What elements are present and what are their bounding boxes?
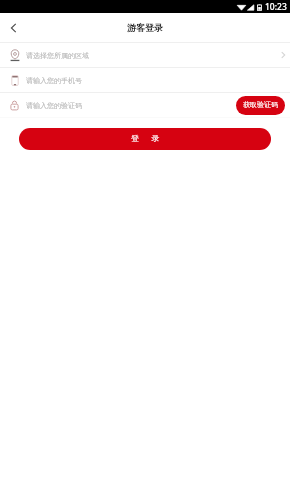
staticText: 游客登录 — [127, 22, 163, 33]
button[interactable]: 请输入您的手机号 — [0, 68, 290, 92]
staticText: 10:23 — [265, 1, 287, 13]
button[interactable]: Back — [0, 14, 28, 42]
button[interactable]: 请输入您的验证码 — [0, 93, 290, 117]
staticText: 请选择您所属的区域 — [26, 51, 89, 60]
staticText: 登 录 — [131, 132, 160, 143]
button[interactable]: 请选择您所属的区域 — [0, 43, 290, 67]
button[interactable]: 登 录 — [19, 128, 271, 150]
staticText: 请输入您的验证码 — [26, 101, 82, 110]
button[interactable]: Select region — [272, 46, 290, 64]
button[interactable]: 获取验证码 — [236, 96, 285, 115]
staticText: 请输入您的手机号 — [26, 76, 82, 85]
staticText: 获取验证码 — [243, 100, 278, 109]
